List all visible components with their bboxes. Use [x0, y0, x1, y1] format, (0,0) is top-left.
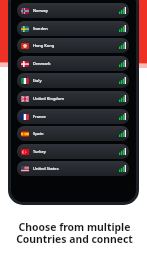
staticText: United States	[33, 166, 59, 171]
staticText: United Kingdom	[33, 96, 64, 101]
button[interactable]: Norway	[17, 3, 129, 18]
other: Signal strength	[119, 113, 126, 120]
button[interactable]: Hong Kong	[17, 38, 129, 53]
other: Signal strength	[119, 165, 126, 172]
staticText: Choose from multiple Countries and conne…	[16, 220, 133, 246]
other: Signal strength	[119, 60, 126, 67]
button[interactable]: France	[17, 109, 129, 124]
other: Signal strength	[119, 25, 126, 32]
staticText: Sweden	[33, 26, 48, 31]
other: Signal strength	[119, 77, 126, 84]
staticText: Italy	[33, 78, 42, 83]
staticText: Denmark	[33, 61, 51, 66]
other: Signal strength	[119, 42, 126, 49]
staticText: France	[33, 114, 46, 119]
other: Signal strength	[119, 7, 126, 14]
button[interactable]: Spain	[17, 126, 129, 141]
staticText: Hong Kong	[33, 43, 55, 48]
button[interactable]: Italy	[17, 73, 129, 88]
button[interactable]: United States	[17, 161, 129, 176]
staticText: Norway	[33, 8, 48, 13]
button[interactable]: Denmark	[17, 56, 129, 71]
other: Signal strength	[119, 95, 126, 102]
button[interactable]: United Kingdom	[17, 91, 129, 106]
button[interactable]: Sweden	[17, 21, 129, 36]
other: Signal strength	[119, 130, 126, 137]
other: Signal strength	[119, 148, 126, 155]
button[interactable]: Turkey	[17, 144, 129, 159]
staticText: Turkey	[33, 149, 46, 154]
staticText: Spain	[33, 131, 44, 136]
